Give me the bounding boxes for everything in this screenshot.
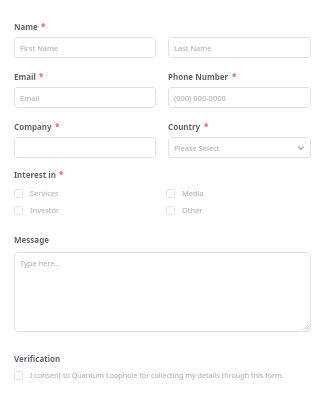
button[interactable]: Type here... — [14, 252, 311, 332]
button[interactable]: Email — [14, 87, 156, 108]
button[interactable]: I consent to Quantum Loophole for collec… — [14, 370, 311, 380]
staticText: Verification — [14, 353, 61, 364]
staticText: Type here... — [20, 258, 61, 268]
staticText: Last Name — [174, 43, 212, 53]
staticText: Phone Number — [168, 71, 229, 82]
button[interactable]: First Name — [14, 37, 156, 58]
staticText: Email — [20, 93, 40, 103]
other: Open country list — [297, 144, 305, 152]
button[interactable]: Services — [14, 185, 166, 201]
staticText: Email — [14, 71, 36, 82]
staticText: * — [204, 121, 209, 132]
staticText: * — [41, 21, 46, 32]
staticText: Media — [182, 188, 204, 198]
staticText: * — [55, 121, 60, 132]
button[interactable]: (000) 000-0000 — [168, 87, 311, 108]
staticText: * — [39, 71, 44, 82]
staticText: Please Select — [174, 143, 220, 153]
button[interactable]: Investor — [14, 202, 166, 218]
staticText: Interest in — [14, 169, 56, 180]
staticText: Investor — [30, 205, 60, 215]
staticText: Other — [182, 205, 203, 215]
staticText: First Name — [20, 43, 59, 53]
button[interactable]: Last Name — [168, 37, 311, 58]
staticText: I consent to Quantum Loophole for collec… — [30, 370, 284, 380]
staticText: Name — [14, 21, 38, 32]
staticText: Message — [14, 234, 49, 245]
staticText: Company — [14, 121, 52, 132]
staticText: * — [59, 169, 64, 180]
button[interactable]: Media — [166, 185, 311, 201]
button[interactable] — [14, 137, 156, 158]
staticText: * — [232, 71, 237, 82]
staticText: (000) 000-0000 — [174, 93, 226, 103]
staticText: Services — [30, 188, 59, 198]
button[interactable]: Other — [166, 202, 311, 218]
button[interactable]: Please Select — [168, 137, 311, 158]
staticText: Country — [168, 121, 201, 132]
